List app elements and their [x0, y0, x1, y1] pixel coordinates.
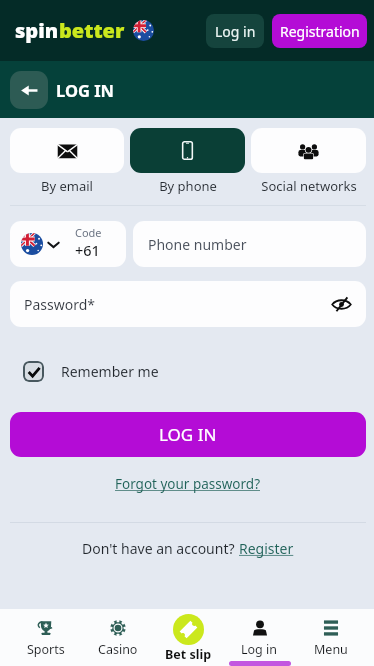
button[interactable]: Password* [10, 281, 366, 327]
button[interactable]: Phone number [133, 221, 366, 267]
staticText: Password* [24, 295, 96, 314]
button[interactable]: Menu [295, 609, 366, 666]
staticText: better [59, 17, 125, 44]
staticText: Registration [280, 22, 360, 41]
staticText: LOG IN [56, 79, 115, 101]
staticText: Log in [215, 22, 256, 41]
button[interactable]: Log in [224, 609, 295, 666]
button[interactable]: Code [10, 221, 126, 267]
staticText: spin [15, 17, 59, 44]
button[interactable]: Remember me [23, 361, 159, 382]
staticText: Menu [314, 641, 348, 658]
button[interactable]: Bet slip [153, 609, 224, 666]
button[interactable]: Sports [10, 609, 82, 666]
button[interactable]: Casino [82, 609, 153, 666]
staticText: Social networks [261, 177, 357, 195]
button[interactable]: Register [239, 539, 294, 558]
button[interactable]: Show password [328, 291, 354, 317]
staticText: Log in [241, 641, 278, 658]
staticText: By email [41, 177, 93, 195]
button[interactable]: By phone [130, 128, 245, 195]
staticText: Don't have an account? [82, 539, 239, 558]
button[interactable]: Social networks [251, 128, 366, 195]
staticText: +61 [75, 240, 100, 260]
button[interactable]: By email [10, 128, 124, 195]
staticText: By phone [159, 177, 217, 195]
staticText: Code [75, 225, 102, 240]
staticText: Casino [98, 641, 138, 658]
staticText: Bet slip [165, 646, 212, 663]
button[interactable]: Registration [272, 14, 367, 48]
button[interactable]: Log in [206, 14, 264, 48]
button[interactable]: Back [10, 71, 48, 109]
staticText: LOG IN [159, 423, 217, 446]
staticText: Remember me [61, 362, 159, 381]
staticText: Sports [27, 641, 65, 658]
button[interactable]: Forgot your password? [115, 475, 261, 493]
button[interactable]: LOG IN [10, 412, 366, 457]
staticText: Phone number [148, 235, 247, 254]
